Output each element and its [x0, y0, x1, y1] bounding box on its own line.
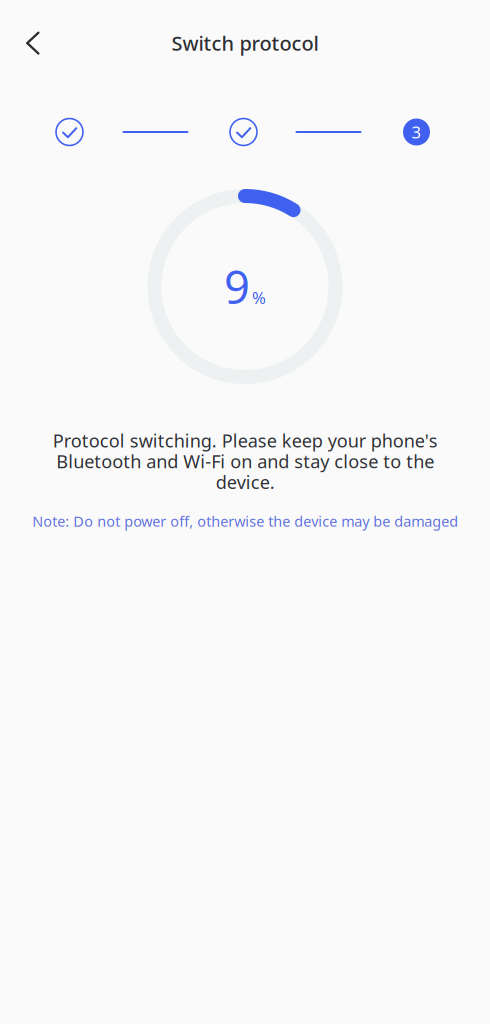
- staticText: %: [252, 286, 266, 309]
- staticText: 3: [411, 121, 421, 143]
- staticText: Note: Do not power off, otherwise the de…: [32, 511, 458, 531]
- staticText: Switch protocol: [171, 30, 318, 56]
- staticText: 9: [224, 256, 250, 317]
- button[interactable]: Back: [10, 20, 56, 66]
- staticText: Protocol switching. Please keep your pho…: [52, 430, 437, 492]
